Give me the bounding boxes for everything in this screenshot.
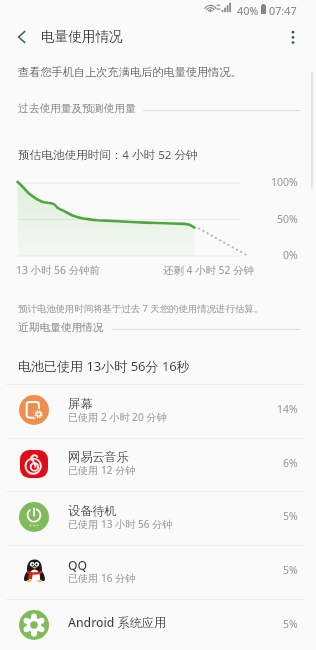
staticText: 查看您手机自上次充满电后的电量使用情况。: [18, 65, 242, 79]
staticText: 还剩 4 小时 52 分钟: [163, 263, 254, 277]
staticText: 5%: [283, 617, 298, 631]
staticText: 已使用 2 小时 20 分钟: [68, 410, 167, 424]
staticText: 已使用 16 分钟: [68, 571, 136, 585]
staticText: 100%: [271, 175, 298, 189]
staticText: 已使用 12 分钟: [68, 463, 136, 477]
staticText: 14%: [277, 402, 298, 416]
staticText: 6%: [283, 456, 298, 470]
button[interactable]: Back: [5, 21, 37, 53]
staticText: QQ: [68, 557, 88, 574]
staticText: 13 小时 56 分钟前: [16, 263, 100, 277]
button[interactable]: [0, 545, 316, 598]
button[interactable]: [0, 599, 316, 650]
staticText: 5%: [283, 509, 298, 523]
staticText: 屏幕: [68, 396, 93, 411]
staticText: 已使用 13 小时 56 分钟: [68, 517, 173, 531]
staticText: 07:47: [269, 3, 297, 18]
staticText: 50%: [277, 212, 298, 226]
button[interactable]: More options: [277, 21, 309, 53]
staticText: 电池已使用 13小时 56分 16秒: [18, 357, 190, 375]
staticText: 电量使用情况: [41, 28, 123, 45]
staticText: 预估电池使用时间：4 小时 52 分钟: [18, 147, 198, 163]
staticText: Android 系统应用: [68, 614, 167, 631]
button[interactable]: [0, 438, 316, 491]
button[interactable]: [0, 384, 316, 437]
staticText: 设备待机: [68, 503, 117, 518]
staticText: 5%: [283, 563, 298, 577]
staticText: 网易云音乐: [68, 449, 129, 464]
staticText: 近期电量使用情况: [18, 321, 104, 334]
staticText: 40%: [237, 3, 259, 18]
staticText: 预计电池使用时间将基于过去 7 天您的使用情况进行估算。: [18, 302, 264, 315]
button[interactable]: [0, 491, 316, 544]
staticText: 过去使用量及预测使用量: [18, 102, 136, 115]
staticText: 0%: [283, 248, 298, 262]
